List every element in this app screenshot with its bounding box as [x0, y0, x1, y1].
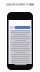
staticText: Become a Better Planner: [6, 3, 34, 6]
